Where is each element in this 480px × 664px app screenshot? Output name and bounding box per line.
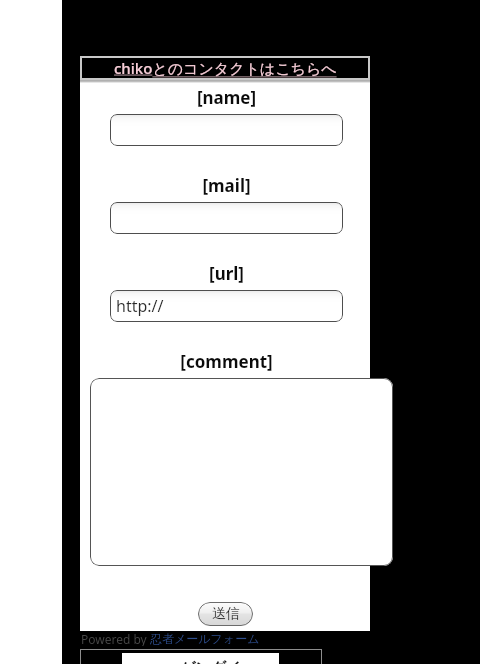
staticText: [mail] [110,174,343,197]
staticText: [url] [110,262,343,285]
button[interactable]: 忍者メールフォーム [150,631,260,646]
staticText: 送信 [212,605,240,623]
button[interactable] [110,114,343,146]
staticText: chikoとのコンタクトはこちらへ [114,58,337,78]
staticText: [comment] [110,350,343,373]
button[interactable]: 送信 [198,602,253,626]
staticText: Powered by [81,631,150,646]
button[interactable] [80,649,322,664]
button[interactable]: chikoとのコンタクトはこちらへ [82,58,368,78]
button[interactable]: http:// [110,290,343,322]
staticText: http:// [116,295,164,317]
staticText: ゲンダイ [180,659,242,664]
button[interactable] [110,202,343,234]
button[interactable] [90,378,393,566]
staticText: [name] [110,86,343,109]
